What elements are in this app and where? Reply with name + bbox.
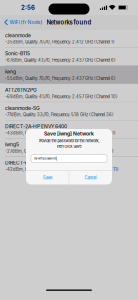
button[interactable]: ATTZ6TN2PG [0,84,138,102]
button[interactable]: WiFi (fr Node) [0,16,42,28]
staticText: Networks found [46,19,91,26]
button[interactable]: Cancel [69,171,112,184]
staticText: mywifipassword [34,157,56,160]
staticText: -43dBm, Quality: 60/70, Frequency: 2.412… [5,131,116,136]
staticText: ATTZ6TN2PG [5,87,37,93]
staticText: -55dBm, Quality: 70/70, Frequency: 2.437… [5,76,116,81]
staticText: Provide the password for the network, [38,138,99,143]
staticText: Save [43,175,52,180]
staticText: iwng5 [5,141,19,147]
button[interactable]: DIRECT-roku-885-C1F0A0 [0,157,138,175]
button[interactable]: cleanmode [0,29,138,47]
staticText: cleanmode [5,32,31,38]
button[interactable]: cleanmode-5G [0,102,138,120]
staticText: Save [iwng] Network [44,131,94,137]
staticText: -35dBm, Quality: 70/70, Frequency: 2.412… [5,40,115,45]
staticText: DIRECT-roku-885-C1F0A0 [5,160,67,166]
button[interactable]: Sonic-B115 [0,48,138,65]
staticText: -67dBm, Quality: 43/70, Frequency: 2.437… [5,58,116,63]
staticText: Cancel [85,175,97,180]
staticText: -69dBm, Quality: 41/70, Frequency: 2.457… [5,94,118,99]
staticText: -27dBm, Quality: 70/70, Frequency: 5.18 … [5,149,114,154]
staticText: iwng [5,69,16,75]
staticText: cleanmode-5G [5,105,40,111]
staticText: DIRECT-2A-HP ENVY 6400 [5,123,67,129]
staticText: 2:56 [21,4,35,11]
button[interactable]: Save [26,171,69,184]
staticText: -77dBm, Quality: 33/70, Frequency: 5.18 … [5,112,114,117]
button[interactable]: iwng [0,66,138,84]
button[interactable]: iwng5 [0,139,138,156]
staticText: Sonic-B115 [5,50,30,56]
staticText: WiFi (fr Node) [9,19,42,25]
staticText: then click Save [56,144,81,149]
button[interactable]: DIRECT-2A-HP ENVY 6400 [0,120,138,138]
staticText: -42dBm, Quality: 55/70, Frequency: 2.462… [5,167,119,172]
